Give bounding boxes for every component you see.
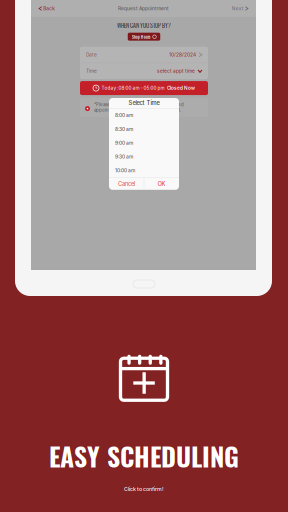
- staticText: OK: [158, 180, 166, 187]
- staticText: 8:00 am: [115, 112, 133, 118]
- staticText: 10:00 am: [115, 167, 135, 173]
- button[interactable]: OK: [144, 178, 179, 190]
- button[interactable]: 9:30 am: [109, 150, 179, 164]
- button[interactable]: 9:00 am: [109, 136, 179, 150]
- button[interactable]: 8:00 am: [109, 108, 179, 122]
- button[interactable]: Date: [80, 47, 208, 63]
- staticText: Back: [43, 6, 55, 11]
- staticText: Time: [86, 68, 97, 74]
- staticText: 9:00 am: [115, 140, 133, 146]
- button[interactable]: Shop Hours: [128, 33, 160, 41]
- staticText: 8:30 am: [115, 126, 133, 132]
- button[interactable]: Click to confirm!: [124, 486, 164, 492]
- staticText: *Please note that availability of the se…: [94, 102, 184, 113]
- button[interactable]: 10:00 am: [109, 164, 179, 177]
- staticText: Shop Hours: [132, 33, 151, 40]
- button[interactable]: Time: [80, 63, 208, 79]
- staticText: EASY SCHEDULING: [49, 437, 239, 475]
- staticText: WHEN CAN YOU STOP BY?: [117, 21, 171, 30]
- button[interactable]: 8:30 am: [109, 122, 179, 136]
- staticText: Request Appointment: [118, 6, 169, 11]
- staticText: Next: [232, 6, 244, 11]
- staticText: Click to confirm!: [124, 486, 164, 492]
- staticText: Today: 08:00 am - 05:00 pm: [101, 85, 164, 91]
- button[interactable]: Cancel: [109, 178, 144, 190]
- staticText: 10/28/2024: [169, 52, 196, 58]
- staticText: Select Time: [128, 99, 159, 106]
- staticText: Date: [86, 52, 97, 58]
- staticText: Cancel: [118, 180, 135, 187]
- staticText: 9:30 am: [115, 154, 133, 160]
- staticText: Closed Now: [167, 85, 195, 91]
- staticText: select appt time: [157, 68, 195, 74]
